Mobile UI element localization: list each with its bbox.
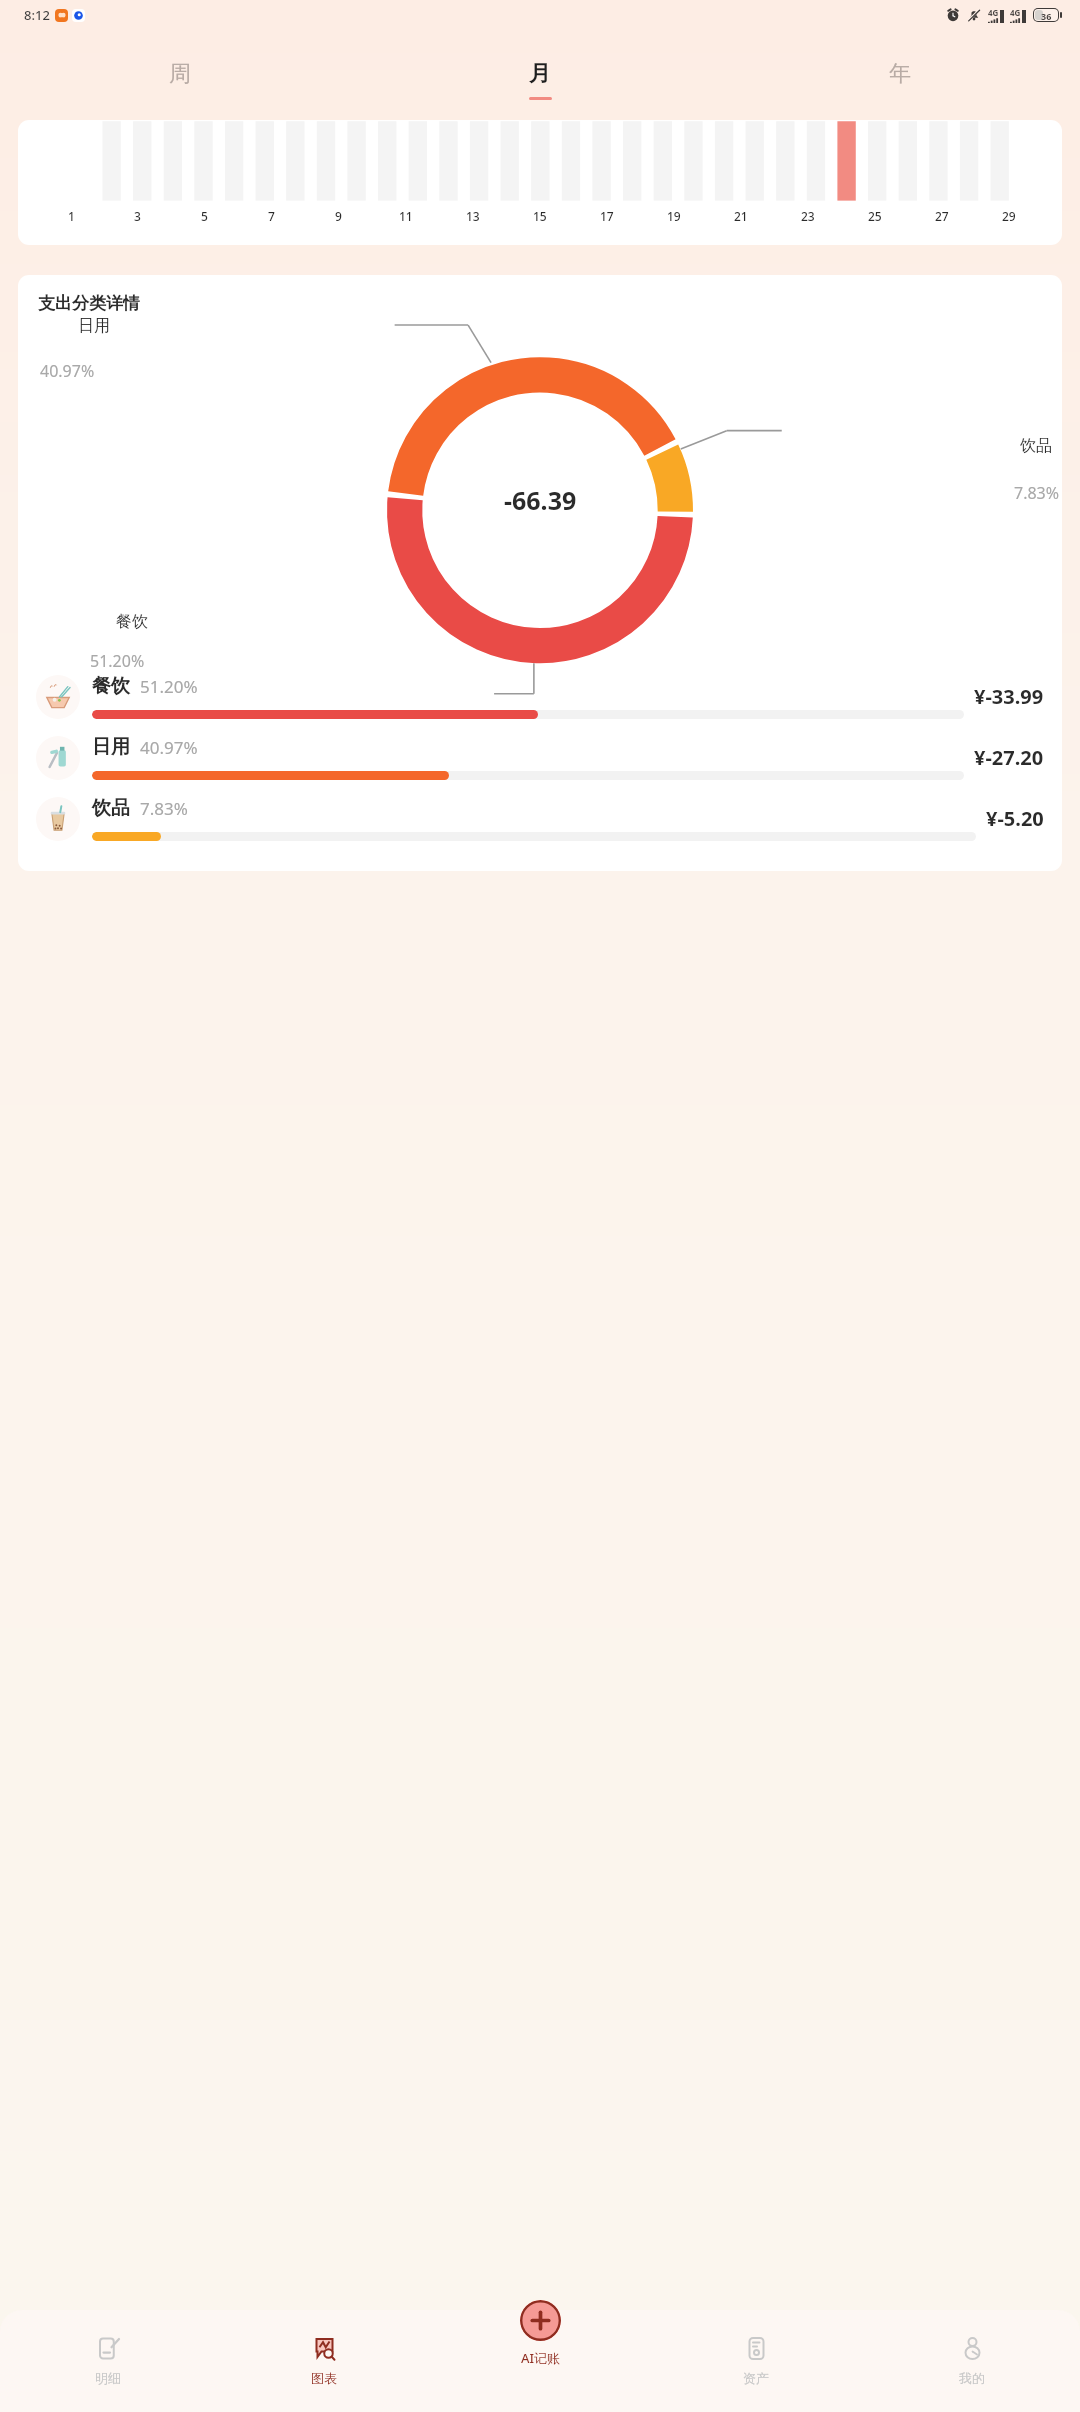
staticText: ¥-33.99 xyxy=(974,683,1044,710)
staticText: 21 xyxy=(734,208,748,224)
button[interactable]: 日用 xyxy=(18,735,1062,780)
staticText: 我的 xyxy=(959,2370,985,2386)
staticText: 7.83% xyxy=(1014,482,1060,504)
staticText: 饮品 xyxy=(1020,436,1052,456)
staticText: 饮品 xyxy=(92,796,130,820)
staticText: 图表 xyxy=(311,2370,337,2386)
button[interactable]: 1 xyxy=(18,120,1062,245)
staticText: 支出分类详情 xyxy=(38,293,140,314)
staticText: 日用 xyxy=(92,735,130,759)
staticText: 年 xyxy=(889,60,911,88)
button[interactable]: 资产 xyxy=(648,2310,864,2412)
staticText: 23 xyxy=(801,208,815,224)
button[interactable]: 我的 xyxy=(864,2310,1080,2412)
staticText: 9 xyxy=(335,208,342,224)
staticText: 36 xyxy=(1041,10,1052,20)
staticText: 餐饮 xyxy=(116,612,148,632)
staticText: 40.97% xyxy=(140,736,198,759)
staticText: AI记账 xyxy=(521,2349,561,2367)
button[interactable]: 明细 xyxy=(0,2310,216,2412)
staticText: 7.83% xyxy=(140,797,188,820)
staticText: 5 xyxy=(201,208,208,224)
button[interactable]: 餐饮 xyxy=(18,674,1062,719)
staticText: 1 xyxy=(68,208,75,224)
button[interactable]: 图表 xyxy=(216,2310,432,2412)
staticText: 17 xyxy=(600,208,614,224)
staticText: 7 xyxy=(268,208,275,224)
staticText: 3 xyxy=(134,208,141,224)
staticText: ¥-27.20 xyxy=(974,744,1044,771)
staticText: ¥-5.20 xyxy=(986,805,1044,832)
staticText: 周 xyxy=(169,60,191,88)
staticText: 29 xyxy=(1002,208,1016,224)
button[interactable]: 周 xyxy=(0,54,360,106)
staticText: 4G xyxy=(988,7,999,18)
staticText: 51.20% xyxy=(90,650,145,672)
button[interactable]: 月 xyxy=(360,54,720,106)
staticText: 明细 xyxy=(95,2370,121,2386)
staticText: 4G xyxy=(1010,7,1021,18)
staticText: 25 xyxy=(868,208,882,224)
staticText: 15 xyxy=(533,208,547,224)
staticText: -66.39 xyxy=(504,483,577,517)
button[interactable]: 年 xyxy=(720,54,1080,106)
staticText: 27 xyxy=(935,208,949,224)
staticText: 19 xyxy=(667,208,681,224)
button[interactable]: 饮品 xyxy=(18,796,1062,841)
staticText: 40.97% xyxy=(40,360,95,382)
staticText: 8:12 xyxy=(24,6,50,24)
button[interactable]: AI记账 xyxy=(520,2300,561,2367)
staticText: 51.20% xyxy=(140,675,198,698)
staticText: 日用 xyxy=(78,316,110,336)
staticText: 月 xyxy=(529,60,551,88)
staticText: 13 xyxy=(466,208,480,224)
staticText: 资产 xyxy=(743,2370,769,2386)
staticText: 11 xyxy=(399,208,413,224)
staticText: 餐饮 xyxy=(92,674,130,698)
